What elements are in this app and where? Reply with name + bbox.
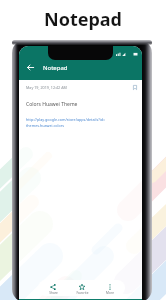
staticText: Favorite: [76, 291, 89, 295]
staticText: http://play.google.com/store/apps/detail…: [26, 117, 106, 122]
button[interactable]: Bookmark: [129, 81, 141, 93]
staticText: Notepad: [44, 7, 122, 32]
staticText: Colors Huawei Theme: [26, 101, 78, 108]
button[interactable]: Share: [40, 283, 66, 293]
staticText: Share: [49, 291, 58, 295]
button[interactable]: Back: [23, 60, 38, 75]
staticText: themes.huawei.colors: [26, 123, 64, 128]
staticText: Notepad: [43, 64, 68, 72]
button[interactable]: More: [97, 283, 123, 293]
button[interactable]: Favorite: [69, 283, 95, 293]
staticText: May 19, 2019, 12:42 AM: [26, 85, 67, 90]
staticText: More: [106, 291, 114, 295]
